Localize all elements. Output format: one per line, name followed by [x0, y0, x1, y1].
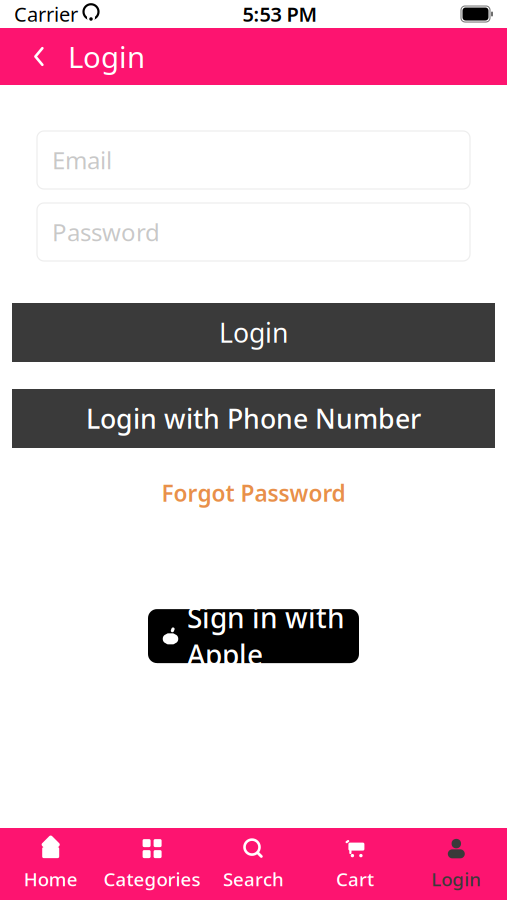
staticText: Categories [104, 867, 201, 891]
button[interactable]: Login [406, 828, 507, 900]
button[interactable]: Cart [304, 828, 406, 900]
button[interactable]: Sign in with Apple [148, 609, 359, 663]
button[interactable]: Back [16, 28, 62, 85]
button[interactable]: Search [203, 828, 304, 900]
staticText: Sign in with Apple [187, 599, 345, 673]
button[interactable]: Forgot Password [151, 472, 355, 514]
staticText: Search [223, 867, 284, 891]
staticText: 5:53 PM [242, 1, 317, 27]
staticText: Home [24, 867, 78, 891]
button[interactable]: Home [0, 828, 101, 900]
staticText: Login with Phone Number [86, 401, 421, 436]
staticText: Login [431, 867, 481, 891]
staticText: Email [52, 144, 112, 176]
button[interactable]: Login [12, 303, 495, 362]
button[interactable]: Login with Phone Number [12, 389, 495, 448]
staticText: Carrier [14, 1, 78, 27]
staticText: Login [68, 37, 145, 76]
staticText: Cart [336, 867, 374, 891]
staticText: Forgot Password [161, 478, 345, 508]
button[interactable]: Categories [101, 828, 203, 900]
staticText: Login [219, 315, 288, 350]
staticText: Password [52, 216, 160, 248]
